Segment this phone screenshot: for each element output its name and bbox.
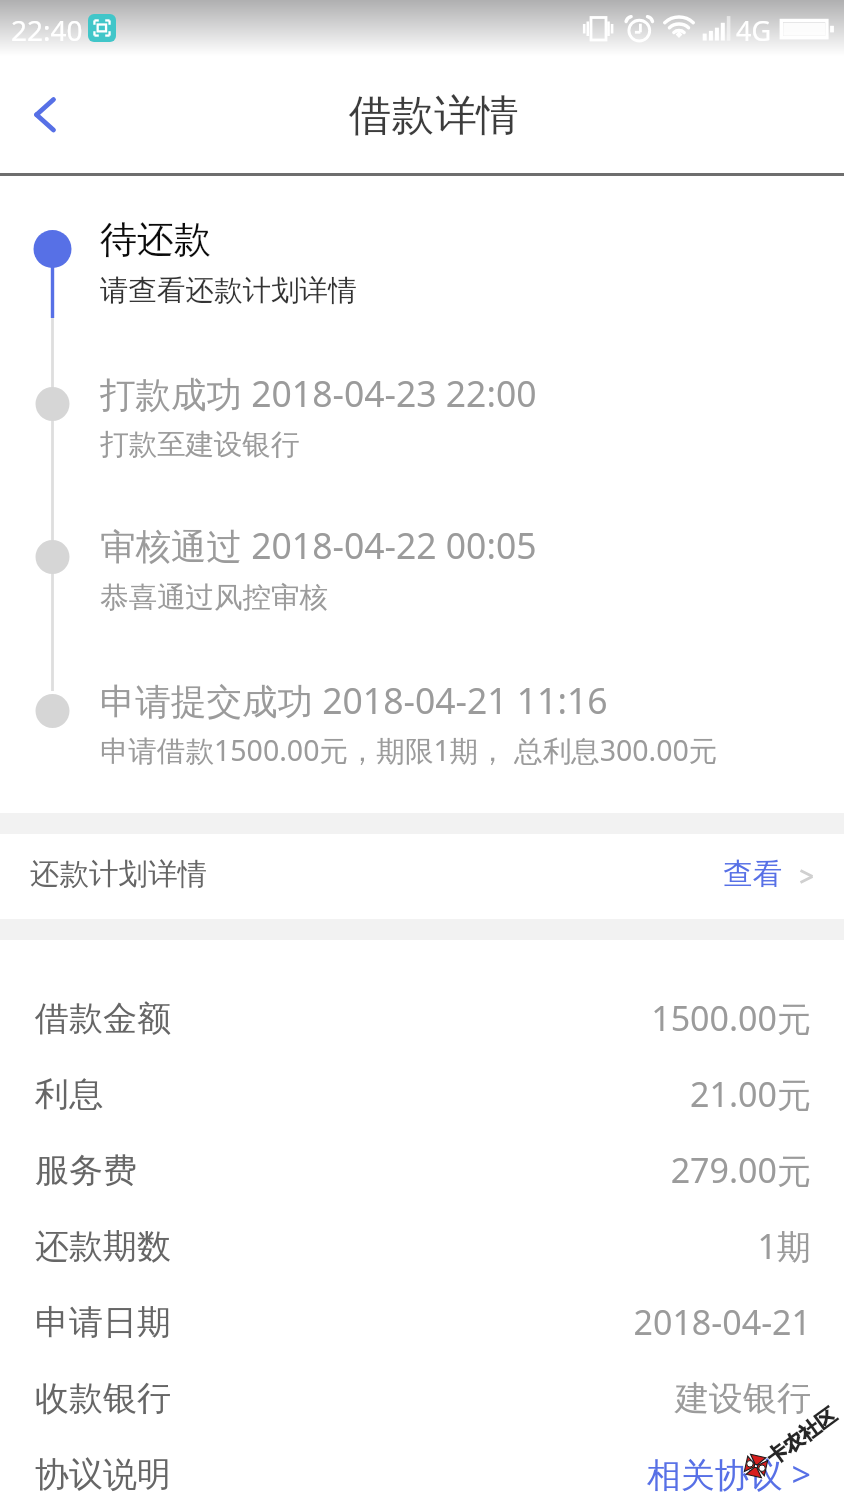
staticText: 建设银行 — [675, 1377, 811, 1420]
staticText: 申请借款1500.00元，期限1期， 总利息300.00元 — [100, 731, 718, 770]
staticText: 打款成功 2018-04-23 22:00 — [100, 369, 537, 417]
staticText: 279.00元 — [670, 1147, 811, 1193]
staticText: 利息 — [35, 1073, 103, 1116]
staticText: 协议说明 — [35, 1453, 171, 1496]
staticText: 还款计划详情 — [30, 856, 207, 893]
staticText: 22:40 — [11, 11, 83, 49]
staticText: 2018-04-21 — [633, 1299, 811, 1345]
staticText: 卡农社区 — [762, 1403, 841, 1470]
staticText: 收款银行 — [35, 1377, 171, 1420]
staticText: 21.00元 — [690, 1071, 811, 1117]
staticText: 1期 — [757, 1223, 811, 1269]
staticText: 借款金额 — [35, 997, 171, 1040]
staticText: 打款至建设银行 — [100, 427, 300, 463]
staticText: 服务费 — [35, 1149, 137, 1192]
staticText: 待还款 — [100, 216, 211, 263]
button[interactable]: Back — [0, 56, 92, 174]
staticText: 4G — [736, 12, 772, 49]
staticText: 审核通过 2018-04-22 00:05 — [100, 521, 537, 569]
staticText: 1500.00元 — [651, 995, 811, 1041]
button[interactable]: 协议说明 — [0, 1436, 844, 1500]
staticText: 恭喜通过风控审核 — [100, 580, 328, 616]
staticText: 借款详情 — [349, 89, 519, 143]
staticText: 查看 — [723, 856, 782, 893]
button[interactable]: 还款计划详情 — [0, 834, 844, 919]
staticText: 请查看还款计划详情 — [100, 273, 357, 309]
staticText: 相关协议 > — [646, 1451, 811, 1497]
staticText: 申请提交成功 2018-04-21 11:16 — [100, 676, 608, 724]
staticText: 还款期数 — [35, 1225, 171, 1268]
staticText: 申请日期 — [35, 1301, 171, 1344]
